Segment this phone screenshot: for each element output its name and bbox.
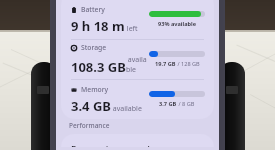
staticText: / 8 GB xyxy=(177,100,195,108)
staticText: available xyxy=(126,55,149,75)
staticText: 3.4 GB xyxy=(71,97,111,115)
staticText: 9 h 18 m xyxy=(71,17,125,35)
button[interactable]: Storage xyxy=(61,40,214,79)
staticText: 19.7 GB xyxy=(155,60,176,68)
staticText: left xyxy=(125,24,138,34)
button[interactable]: Memory xyxy=(61,80,214,119)
staticText: 108.3 GB xyxy=(71,58,126,76)
other: Battery xyxy=(71,7,77,13)
staticText: 93% available xyxy=(158,20,197,28)
staticText: available xyxy=(111,104,142,114)
staticText: Performance xyxy=(69,121,110,130)
staticText: Memory xyxy=(81,85,109,94)
staticText: 3.7 GB xyxy=(159,100,177,108)
other: Memory xyxy=(71,87,77,93)
staticText: Processing speed xyxy=(71,143,150,147)
button[interactable]: Processing speed xyxy=(61,134,214,147)
staticText: Battery xyxy=(81,5,105,14)
staticText: / 128 GB xyxy=(176,60,200,68)
other: Storage xyxy=(71,45,77,51)
staticText: Storage xyxy=(81,43,107,52)
button[interactable]: Battery xyxy=(61,0,214,39)
